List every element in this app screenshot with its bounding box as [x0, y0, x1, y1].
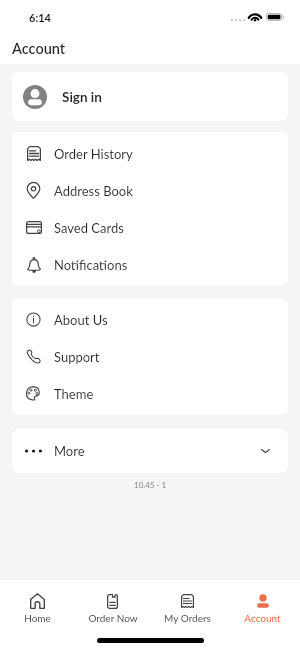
button[interactable]: Account: [225, 584, 300, 629]
button[interactable]: Home: [0, 584, 75, 629]
button[interactable]: My Orders: [150, 584, 225, 629]
staticText: Order Now: [88, 612, 138, 624]
staticText: Order History: [54, 146, 133, 162]
button[interactable]: Notifications: [12, 246, 288, 283]
staticText: Account: [12, 40, 66, 57]
button[interactable]: About Us: [12, 301, 288, 338]
staticText: Address Book: [54, 183, 133, 199]
staticText: Account: [244, 612, 281, 624]
staticText: Home: [24, 612, 51, 624]
staticText: Theme: [54, 386, 94, 402]
staticText: Saved Cards: [54, 220, 124, 236]
staticText: Support: [54, 349, 100, 365]
staticText: 6:14: [29, 11, 51, 24]
staticText: My Orders: [164, 612, 211, 624]
button[interactable]: Order Now: [75, 584, 150, 629]
staticText: About Us: [54, 312, 108, 328]
button[interactable]: Support: [12, 338, 288, 375]
button[interactable]: Saved Cards: [12, 209, 288, 246]
button[interactable]: Theme: [12, 375, 288, 412]
button[interactable]: More: [12, 429, 288, 473]
staticText: Sign in: [62, 89, 102, 105]
button[interactable]: Address Book: [12, 172, 288, 209]
button[interactable]: Sign in: [12, 72, 288, 121]
staticText: 10.45 - 1: [134, 480, 167, 490]
staticText: More: [54, 443, 85, 459]
button[interactable]: Order History: [12, 135, 288, 172]
staticText: Notifications: [54, 257, 128, 273]
